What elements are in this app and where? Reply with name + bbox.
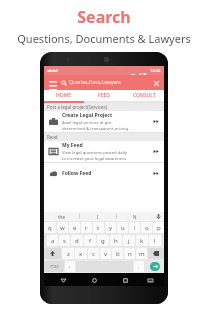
staticText: . — [138, 263, 140, 270]
staticText: l — [154, 237, 156, 245]
staticText: Questions, Documents & Lawyers — [17, 31, 191, 46]
staticText: airtel — [47, 68, 58, 73]
button[interactable]: j — [123, 235, 135, 246]
button[interactable]: HOME — [44, 90, 84, 101]
button[interactable]: i — [129, 222, 140, 233]
button[interactable]: the — [44, 212, 79, 221]
button[interactable]: g — [97, 235, 109, 246]
staticText: View legal questions posted daily — [62, 150, 127, 156]
staticText: Avail legal services at pre- — [62, 120, 113, 126]
staticText: Follow Feed — [62, 170, 92, 177]
staticText: My Feed — [62, 142, 83, 149]
staticText: 12:12 — [150, 68, 161, 73]
staticText: Post a legal project(Services) — [47, 104, 108, 110]
staticText: n — [128, 250, 132, 258]
staticText: c — [92, 250, 95, 258]
staticText: z — [67, 250, 70, 258]
staticText: to increase your legal awareness — [62, 156, 127, 162]
button[interactable]: . — [134, 261, 144, 272]
button[interactable]: y — [105, 222, 116, 233]
button[interactable]: v — [100, 248, 111, 259]
staticText: x — [79, 250, 83, 258]
staticText: d — [75, 237, 79, 245]
button[interactable]: Recents — [119, 274, 131, 286]
button[interactable]: p — [153, 222, 164, 233]
button[interactable]: Voice input — [153, 212, 164, 221]
button[interactable]: x — [75, 248, 87, 259]
staticText: ?123 — [50, 264, 59, 269]
staticText: g — [101, 237, 105, 245]
staticText: b — [116, 250, 120, 258]
button[interactable]: Create Legal Project — [44, 111, 164, 132]
staticText: Search — [77, 6, 131, 28]
button[interactable]: Go — [150, 262, 160, 271]
button[interactable]: b — [112, 248, 123, 259]
button[interactable]: u — [117, 222, 128, 233]
staticText: N — [133, 214, 137, 220]
button[interactable]: e — [69, 222, 80, 233]
button[interactable]: Follow Feed — [44, 163, 164, 184]
staticText: v — [104, 250, 108, 258]
button[interactable]: m — [136, 248, 147, 259]
button[interactable]: c — [88, 248, 99, 259]
staticText: h — [114, 237, 118, 245]
staticText: s — [63, 237, 66, 245]
button[interactable]: Backspace — [148, 248, 164, 259]
button[interactable]: , — [65, 261, 75, 272]
staticText: j — [128, 237, 130, 245]
staticText: o — [145, 224, 149, 232]
button[interactable]: r — [81, 222, 92, 233]
button[interactable]: d — [71, 235, 83, 246]
staticText: the — [58, 214, 65, 220]
staticText: f — [89, 237, 92, 245]
staticText: HOME — [56, 92, 72, 99]
staticText: q — [48, 224, 52, 232]
button[interactable]: N — [117, 212, 153, 221]
button[interactable]: s — [59, 235, 70, 246]
button[interactable]: Clear — [151, 78, 161, 88]
button[interactable]: a — [47, 235, 58, 246]
button[interactable]: h — [110, 235, 122, 246]
staticText: e — [73, 224, 77, 232]
staticText: FEED — [98, 92, 110, 99]
button[interactable]: w — [57, 222, 68, 233]
button[interactable]: I — [80, 212, 116, 221]
staticText: Queries,Docs,Lawyers — [69, 79, 121, 86]
button[interactable]: q — [44, 222, 56, 233]
button[interactable]: k — [136, 235, 148, 246]
button[interactable]: My Feed — [44, 141, 164, 162]
button[interactable]: f — [84, 235, 96, 246]
staticText: u — [121, 224, 125, 232]
button[interactable]: Back — [57, 274, 69, 286]
staticText: I — [97, 214, 99, 220]
staticText: t — [97, 224, 100, 232]
button[interactable]: CONSULT — [124, 90, 164, 101]
staticText: , — [69, 263, 71, 270]
staticText: i — [134, 224, 136, 232]
staticText: CONSULT — [133, 92, 156, 99]
button[interactable]: Menu — [47, 77, 58, 88]
button[interactable]: Home — [88, 274, 100, 286]
staticText: determined & transparent pricing. — [62, 126, 130, 132]
button[interactable]: ?123 — [44, 261, 64, 272]
staticText: a — [51, 237, 55, 245]
staticText: Create Legal Project — [62, 112, 113, 119]
button[interactable]: n — [124, 248, 135, 259]
button[interactable]: FEED — [84, 90, 124, 101]
staticText: w — [60, 224, 65, 232]
staticText: k — [140, 237, 144, 245]
button[interactable]: l — [149, 235, 161, 246]
staticText: m — [139, 250, 145, 258]
staticText: r — [85, 224, 88, 232]
button[interactable]: t — [93, 222, 104, 233]
staticText: y — [109, 224, 113, 232]
staticText: p — [157, 224, 161, 232]
button[interactable]: z — [62, 248, 74, 259]
button[interactable]: o — [141, 222, 152, 233]
button[interactable]: Hide keyboard — [144, 274, 156, 286]
button[interactable]: Shift — [44, 248, 61, 259]
staticText: Read — [47, 134, 58, 140]
